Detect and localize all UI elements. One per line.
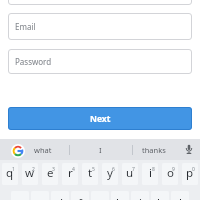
staticText: 8 <box>152 166 155 173</box>
button[interactable]: d <box>51 191 69 200</box>
button[interactable]: p <box>182 163 198 185</box>
staticText: p <box>186 165 194 181</box>
staticText: j <box>139 195 142 200</box>
button[interactable]: q <box>2 163 18 185</box>
button[interactable] <box>181 141 197 157</box>
staticText: k <box>157 195 164 200</box>
staticText: l <box>179 195 182 200</box>
staticText: 3 <box>52 166 55 173</box>
staticText: d <box>56 195 64 200</box>
button[interactable]: y <box>102 163 118 185</box>
button[interactable]: f <box>71 191 89 200</box>
staticText: 0 <box>192 166 195 173</box>
staticText: i <box>149 165 152 181</box>
staticText: 1 <box>12 166 15 173</box>
staticText: h <box>116 195 124 200</box>
staticText: e <box>47 165 54 181</box>
button[interactable] <box>10 143 26 159</box>
button[interactable]: Next <box>8 107 192 130</box>
staticText: Next <box>90 113 111 125</box>
button[interactable]: Email <box>8 13 192 40</box>
staticText: y <box>107 165 113 181</box>
staticText: u <box>126 165 134 181</box>
button[interactable]: I <box>85 139 115 160</box>
staticText: Email <box>15 21 36 32</box>
button[interactable]: t <box>82 163 98 185</box>
button[interactable]: u <box>122 163 138 185</box>
staticText: t <box>88 165 93 181</box>
button[interactable]: r <box>62 163 78 185</box>
staticText: r <box>68 165 73 181</box>
button[interactable]: o <box>162 163 178 185</box>
button[interactable]: i <box>142 163 158 185</box>
staticText: 4 <box>72 166 75 173</box>
button[interactable]: thanks <box>139 139 169 160</box>
staticText: 7 <box>132 166 135 173</box>
staticText: o <box>167 165 174 181</box>
staticText: q <box>6 165 14 181</box>
button[interactable]: h <box>111 191 129 200</box>
staticText: w <box>25 165 35 181</box>
button[interactable]: e <box>42 163 58 185</box>
button[interactable]: k <box>151 191 169 200</box>
staticText: I <box>99 145 102 155</box>
staticText: 5 <box>92 166 95 173</box>
staticText: 9 <box>172 166 175 173</box>
button[interactable]: Password <box>8 49 192 74</box>
staticText: 6 <box>112 166 115 173</box>
staticText: what <box>34 145 52 155</box>
staticText: 2 <box>32 166 35 173</box>
staticText: thanks <box>142 145 166 155</box>
staticText: Password <box>15 56 52 67</box>
button[interactable]: what <box>28 139 58 160</box>
staticText: f <box>78 195 82 200</box>
button[interactable]: l <box>171 191 189 200</box>
button[interactable]: w <box>22 163 38 185</box>
button[interactable]: j <box>131 191 149 200</box>
